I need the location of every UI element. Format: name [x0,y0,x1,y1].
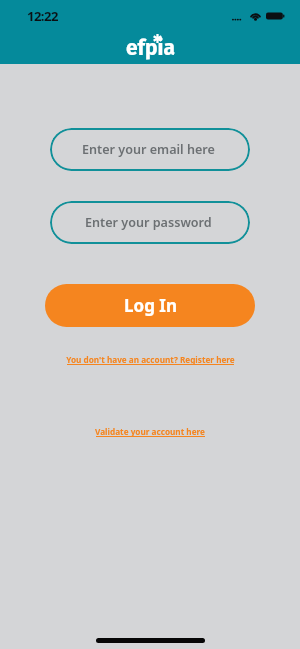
staticText: 12:22 [27,7,58,25]
staticText: Validate your account here [95,426,205,437]
button[interactable]: Enter your email here [50,128,250,171]
button[interactable]: Log In [45,284,255,327]
other: Wi-Fi [249,11,262,21]
button[interactable]: Enter your password [50,201,250,244]
staticText: Enter your email here [82,141,215,158]
staticText: efpia [126,35,176,60]
staticText: Enter your password [85,214,212,231]
other: Cellular signal [232,11,241,21]
other: efpia [126,21,176,46]
staticText: You don't have an account? Register here [66,354,235,365]
button[interactable]: You don't have an account? Register here [66,354,235,366]
staticText: Log In [124,294,177,317]
other: Battery full [266,11,286,21]
button[interactable]: Validate your account here [95,426,205,438]
